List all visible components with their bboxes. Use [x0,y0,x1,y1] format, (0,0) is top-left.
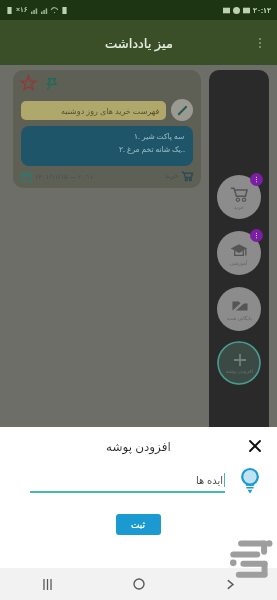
staticText: خرید [234,204,244,210]
button[interactable]: Close [243,434,267,458]
button[interactable]: ایده ها [30,469,225,491]
staticText: بایگانی شده [227,315,252,322]
button[interactable]: بایگانی شده [215,285,263,333]
staticText: ۲۰:۱۲ [253,5,272,15]
staticText: ایده ها [196,473,223,487]
button[interactable]: Home [122,568,156,600]
button[interactable]: افزودن پوشه [217,341,261,385]
button[interactable]: خرید [215,173,263,221]
staticText: افزودن پوشه [226,368,253,375]
staticText: ×۱۶ [16,5,28,15]
button[interactable]: Recents [30,568,64,600]
button[interactable]: Back [213,568,247,600]
staticText: ۱۴۰۱/۱۱/۱۵ — ۲۰:۱۱ [35,172,94,181]
staticText: ثبت [131,520,146,530]
staticText: آموزشی [230,260,248,266]
button[interactable]: ثبت [116,514,161,535]
staticText: افزودن پوشه [106,438,171,454]
staticText: ۱. سه پاکت شیر [134,131,185,141]
button[interactable]: فهرست خرید های روز دوشنبه [13,70,201,188]
staticText: خرید [165,172,179,180]
button[interactable]: آموزشی [215,229,263,277]
button[interactable]: Idea [233,464,267,498]
staticText: فهرست خرید های روز دوشنبه [61,105,160,116]
staticText: ۲. یک شانه تخم مرغ.. [119,144,185,154]
button[interactable]: More options [243,26,277,60]
staticText: میز یادداشت [105,34,173,52]
button[interactable]: Edit [171,99,193,121]
